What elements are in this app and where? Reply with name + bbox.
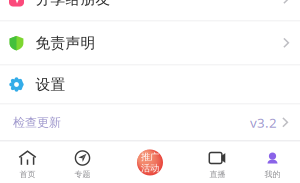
staticText: 推广	[141, 151, 159, 162]
button[interactable]: 设置	[0, 65, 300, 104]
staticText: 分享给朋友	[35, 0, 110, 8]
staticText: 直播	[209, 169, 225, 179]
staticText: 设置	[35, 75, 65, 93]
staticText: 检查更新	[13, 115, 61, 130]
button[interactable]: 推广	[110, 141, 190, 183]
staticText: 活动	[141, 162, 159, 174]
staticText: 首页	[19, 169, 35, 179]
button[interactable]: 检查更新	[0, 104, 300, 141]
staticText: 专题	[74, 169, 90, 179]
button[interactable]: 分享给朋友	[0, 0, 300, 21]
staticText: v3.2	[250, 114, 277, 131]
button[interactable]: 首页	[0, 141, 55, 183]
staticText: 免责声明	[35, 34, 95, 52]
staticText: 我的	[264, 169, 280, 179]
button[interactable]: 免责声明	[0, 21, 300, 65]
button[interactable]: 专题	[55, 141, 110, 183]
button[interactable]: 直播	[190, 141, 245, 183]
button[interactable]: 我的	[245, 141, 300, 183]
